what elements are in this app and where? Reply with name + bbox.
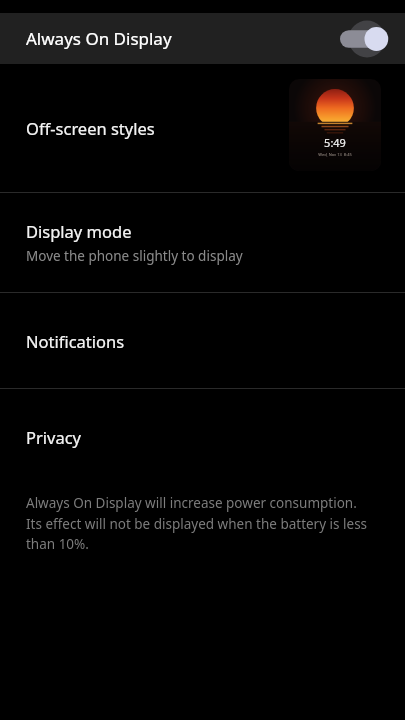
staticText: Always On Display bbox=[26, 27, 331, 50]
button[interactable]: Privacy bbox=[0, 389, 405, 484]
button[interactable]: Display mode bbox=[0, 193, 405, 292]
staticText: Notifications bbox=[26, 330, 125, 352]
button[interactable]: Always On Display toggle, on bbox=[331, 17, 391, 61]
staticText: Move the phone slightly to display bbox=[26, 247, 243, 265]
button[interactable]: Off-screen styles bbox=[0, 64, 405, 192]
staticText: Wed, Nov 13 8:45 bbox=[318, 152, 352, 157]
staticText: Off-screen styles bbox=[26, 117, 289, 139]
staticText: Privacy bbox=[26, 426, 82, 448]
staticText: 5:49 bbox=[324, 135, 346, 150]
staticText: Always On Display will increase power co… bbox=[26, 494, 375, 553]
button[interactable]: Always On Display bbox=[0, 13, 405, 64]
button[interactable]: Notifications bbox=[0, 293, 405, 388]
button[interactable]: Off-screen style preview bbox=[289, 79, 381, 171]
staticText: Display mode bbox=[26, 220, 132, 242]
